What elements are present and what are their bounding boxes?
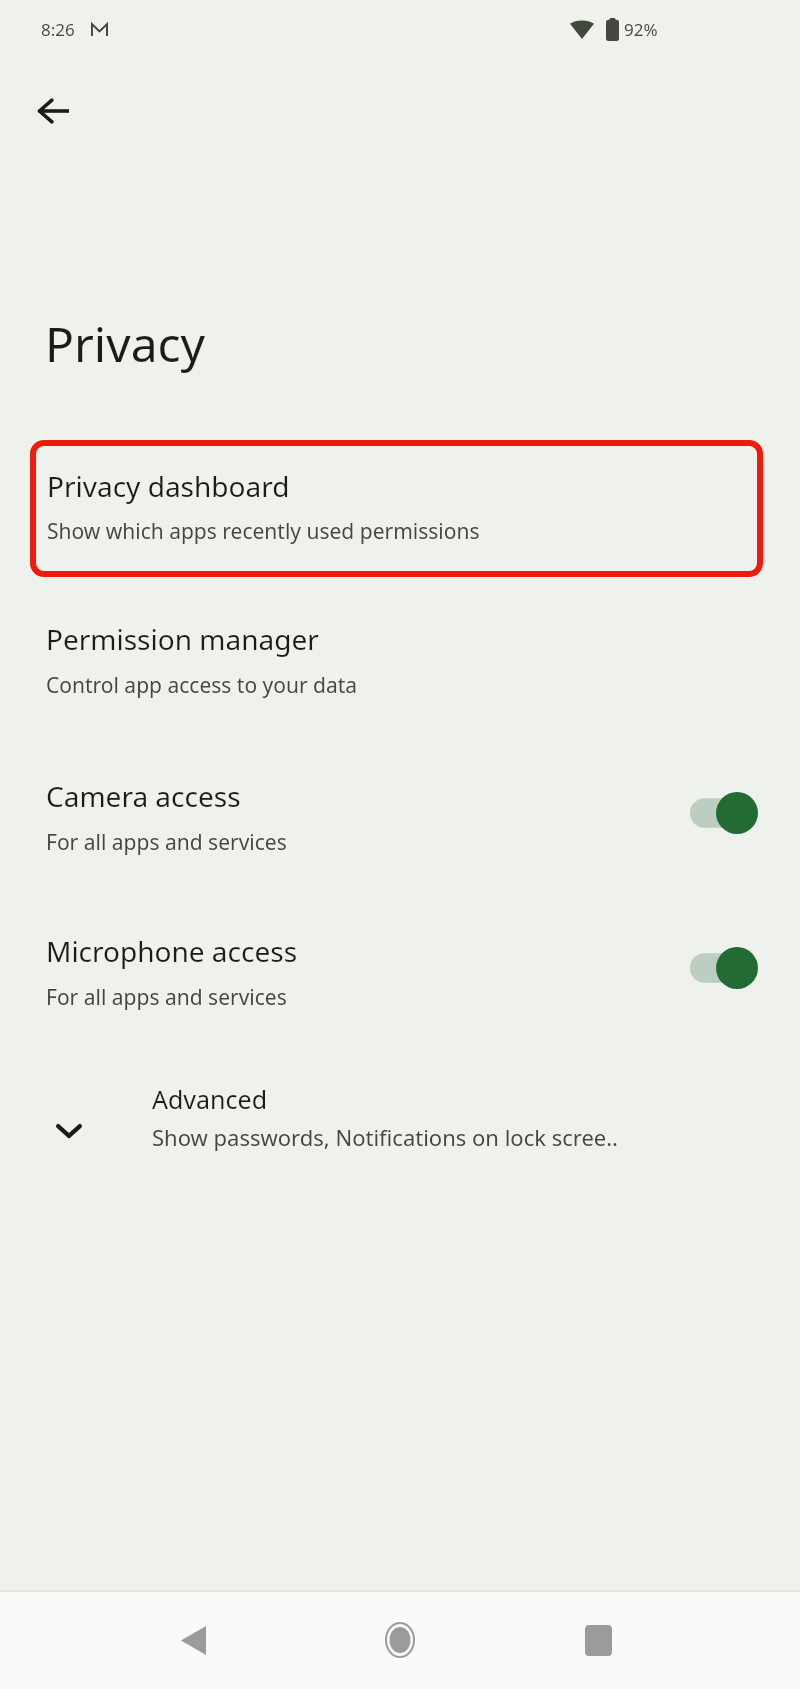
staticText: Show passwords, Notifications on lock sc… bbox=[152, 1122, 772, 1152]
staticText: Privacy dashboard bbox=[47, 467, 290, 505]
staticText: For all apps and services bbox=[46, 983, 287, 1012]
staticText: Permission manager bbox=[46, 620, 319, 658]
staticText: Show which apps recently used permission… bbox=[47, 517, 480, 546]
staticText: Advanced bbox=[152, 1082, 268, 1116]
button[interactable]: Back bbox=[20, 78, 86, 144]
button[interactable]: Permission manager bbox=[0, 600, 800, 732]
button[interactable]: Microphone access bbox=[0, 910, 800, 1050]
staticText: 92% bbox=[624, 18, 658, 41]
staticText: Privacy bbox=[45, 311, 206, 376]
button[interactable]: Advanced bbox=[0, 1060, 800, 1215]
staticText: For all apps and services bbox=[46, 828, 287, 857]
staticText: Microphone access bbox=[46, 932, 298, 970]
button[interactable]: Microphone access toggle bbox=[690, 943, 770, 993]
staticText: Camera access bbox=[46, 777, 241, 815]
button[interactable]: Camera access toggle bbox=[690, 788, 770, 838]
button[interactable]: Recent apps bbox=[565, 1607, 631, 1673]
staticText: 8:26 bbox=[41, 18, 75, 41]
button[interactable]: Home bbox=[367, 1607, 433, 1673]
button[interactable]: Back bbox=[160, 1607, 226, 1673]
staticText: Control app access to your data bbox=[46, 671, 358, 700]
button[interactable]: Camera access bbox=[0, 755, 800, 895]
button[interactable]: Privacy dashboard bbox=[30, 440, 763, 577]
